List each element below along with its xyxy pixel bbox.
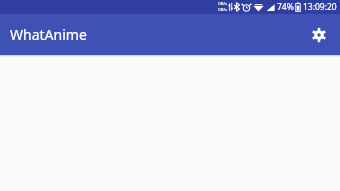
staticText: 0B/s [218, 1, 227, 7]
staticText: 13:09:20 [303, 1, 337, 13]
button[interactable]: Settings [306, 22, 332, 48]
staticText: 0B/s [218, 7, 227, 13]
staticText: 74% [277, 1, 294, 13]
staticText: WhatAnime [10, 25, 87, 44]
